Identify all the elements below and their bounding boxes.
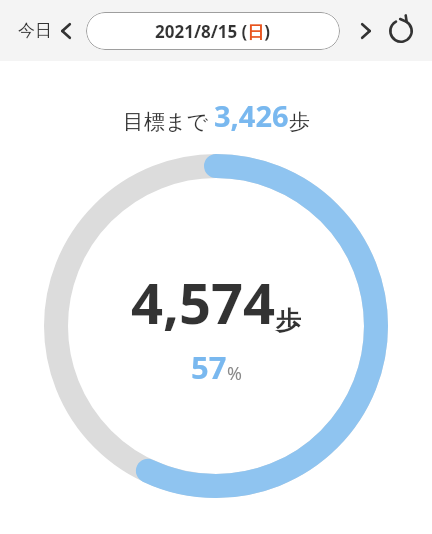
- staticText: 今日: [18, 20, 52, 41]
- staticText: 歩: [276, 305, 301, 336]
- staticText: 歩: [289, 109, 310, 135]
- staticText: 4,574: [131, 264, 276, 340]
- staticText: 3,426: [214, 96, 289, 135]
- staticText: %: [227, 361, 242, 386]
- staticText: 目標まで: [123, 109, 208, 135]
- button[interactable]: Refresh: [384, 12, 418, 50]
- staticText: 2021/8/15 (日): [155, 20, 271, 43]
- button[interactable]: 2021/8/15 (日): [86, 12, 340, 50]
- button[interactable]: 今日: [16, 14, 76, 47]
- button[interactable]: Next day: [352, 12, 378, 50]
- staticText: 57: [191, 346, 227, 388]
